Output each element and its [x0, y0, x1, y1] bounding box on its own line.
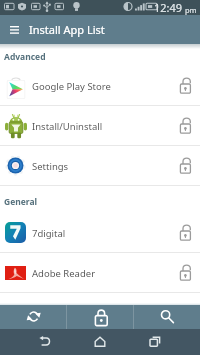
button[interactable]: Adobe Reader	[0, 253, 200, 293]
button[interactable]: Back	[32, 329, 58, 355]
staticText: Settings	[32, 160, 69, 173]
staticText: 7digital	[32, 227, 66, 240]
button[interactable]: Refresh	[0, 305, 66, 329]
staticText: Adobe Reader	[32, 267, 96, 280]
staticText: Install App List	[29, 22, 105, 37]
staticText: Install/Uninstall	[32, 120, 103, 133]
button[interactable]: Settings	[0, 146, 200, 186]
staticText: 12:49	[154, 0, 183, 15]
button[interactable]: Home	[87, 329, 113, 355]
staticText: Advanced	[4, 51, 46, 63]
button[interactable]: 7digital	[0, 213, 200, 253]
button[interactable]: Google Play Store	[0, 66, 200, 106]
button[interactable]: Search	[134, 305, 200, 329]
button[interactable]: Recent apps	[142, 329, 168, 355]
button[interactable]: Lock	[67, 305, 133, 329]
button[interactable]: Open navigation menu	[0, 15, 29, 44]
staticText: pm	[185, 5, 197, 15]
staticText: Google Play Store	[32, 80, 111, 93]
staticText: General	[4, 196, 38, 208]
button[interactable]: Install/Uninstall	[0, 106, 200, 146]
